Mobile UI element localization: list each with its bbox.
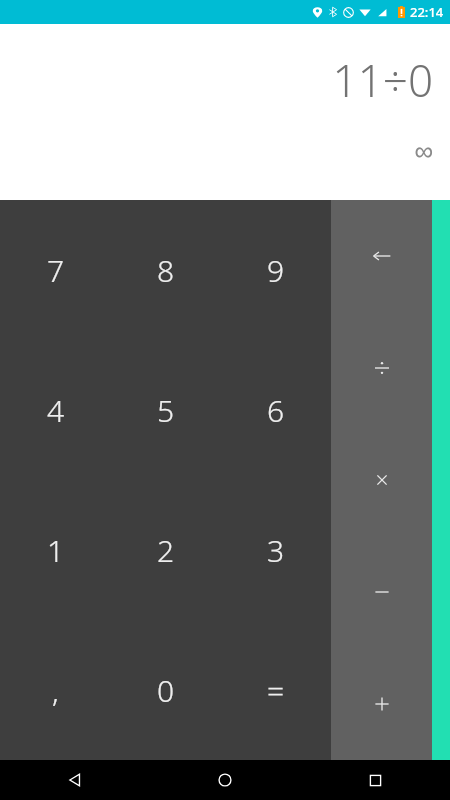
button[interactable]: 4	[0, 340, 111, 480]
staticText: 2	[157, 530, 175, 571]
button[interactable]: 7	[0, 200, 111, 340]
button[interactable]: Backspace	[331, 200, 432, 312]
button[interactable]: 0	[111, 620, 221, 760]
button[interactable]: 5	[111, 340, 221, 480]
button[interactable]: Divide	[331, 312, 432, 424]
staticText: 0	[157, 670, 175, 711]
staticText: 11÷0	[332, 50, 433, 110]
staticText: 5	[157, 390, 175, 431]
button[interactable]: Recents	[300, 760, 450, 800]
staticText: ∞	[414, 136, 433, 165]
button[interactable]: 9	[221, 200, 331, 340]
staticText: 1	[47, 530, 65, 571]
staticText: 8	[157, 250, 175, 291]
button[interactable]: 1	[0, 480, 111, 620]
staticText: 6	[267, 390, 285, 431]
button[interactable]: 6	[221, 340, 331, 480]
button[interactable]: Home	[150, 760, 300, 800]
button[interactable]: Back	[0, 760, 150, 800]
button[interactable]: ,	[0, 620, 111, 760]
staticText: ,	[52, 670, 59, 711]
button[interactable]: 8	[111, 200, 221, 340]
staticText: 3	[267, 530, 285, 571]
button[interactable]: Subtract	[331, 536, 432, 648]
staticText: =	[267, 670, 285, 711]
staticText: 22:14	[410, 3, 444, 21]
button[interactable]: 3	[221, 480, 331, 620]
button[interactable]: =	[221, 620, 331, 760]
button[interactable]: 2	[111, 480, 221, 620]
button[interactable]: Add	[331, 648, 432, 760]
staticText: 9	[267, 250, 285, 291]
button[interactable]: Multiply	[331, 424, 432, 536]
staticText: 4	[47, 390, 65, 431]
staticText: 7	[47, 250, 65, 291]
